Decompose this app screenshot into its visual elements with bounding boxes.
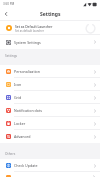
button[interactable]: Locker	[0, 117, 100, 130]
button[interactable]: Set as Default Launcher	[0, 21, 100, 35]
button[interactable]: Personalization	[0, 65, 100, 78]
staticText: Check Update	[14, 163, 38, 168]
staticText: Others	[5, 152, 16, 156]
button[interactable]: Grid	[0, 91, 100, 104]
staticText: Settings	[40, 11, 61, 18]
button[interactable]: System Settings	[0, 35, 100, 49]
staticText: Grid	[14, 95, 22, 100]
staticText: 3:50 PM	[3, 2, 15, 6]
staticText: System Settings	[14, 40, 41, 45]
staticText: Set as Default Launcher	[15, 24, 53, 28]
staticText: Icon	[14, 82, 22, 87]
button[interactable]: Icon	[0, 78, 100, 91]
staticText: Personalization	[14, 69, 40, 74]
staticText: Locker	[14, 121, 26, 126]
button[interactable]	[3, 11, 9, 17]
staticText: Settings	[5, 54, 18, 58]
staticText: Notification dots	[14, 108, 42, 113]
button[interactable]: Check Update	[0, 159, 100, 172]
staticText: Set as default launcher	[15, 29, 44, 33]
button[interactable]: Notification dots	[0, 104, 100, 117]
staticText: Advanced	[14, 134, 31, 139]
button[interactable]: Advanced	[0, 130, 100, 143]
button[interactable]	[0, 172, 100, 177]
